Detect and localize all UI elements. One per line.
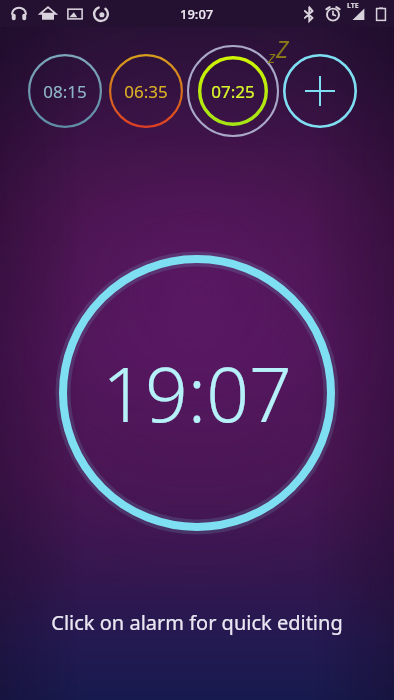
staticText: 06:35 bbox=[124, 80, 168, 103]
staticText: LTE bbox=[347, 1, 359, 11]
staticText: 19:07 bbox=[180, 5, 214, 23]
button[interactable]: 19:07 bbox=[54, 250, 340, 536]
staticText: z bbox=[268, 45, 276, 68]
button[interactable]: 08:15 bbox=[26, 52, 104, 130]
button[interactable]: 07:25 bbox=[185, 43, 281, 139]
staticText: 08:15 bbox=[43, 80, 87, 103]
button[interactable]: Add alarm bbox=[281, 52, 359, 130]
staticText: Click on alarm for quick editing bbox=[0, 609, 394, 636]
staticText: Z bbox=[276, 33, 289, 64]
staticText: 07:25 bbox=[211, 80, 255, 103]
button[interactable]: 06:35 bbox=[107, 52, 185, 130]
staticText: 19:07 bbox=[102, 342, 292, 444]
